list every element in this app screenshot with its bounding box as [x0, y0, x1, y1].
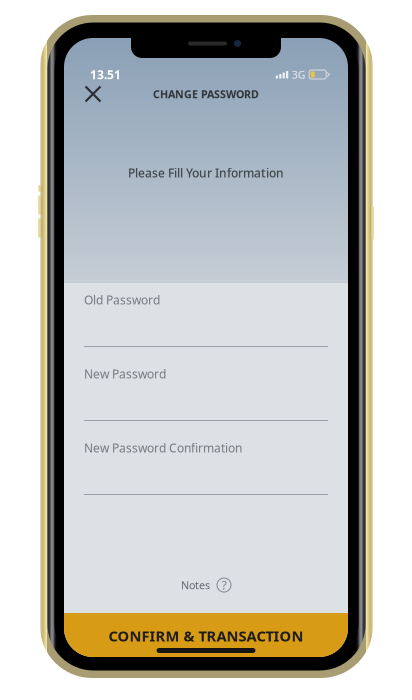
- staticText: New Password Confirmation: [84, 440, 242, 456]
- staticText: 13.51: [90, 66, 121, 82]
- staticText: 3G: [292, 67, 306, 82]
- staticText: CHANGE PASSWORD: [153, 87, 259, 101]
- staticText: Notes: [181, 578, 210, 592]
- button[interactable]: Close: [79, 80, 107, 108]
- staticText: ?: [221, 577, 226, 593]
- button[interactable]: Notes: [175, 571, 237, 599]
- staticText: CONFIRM & TRANSACTION: [108, 626, 303, 645]
- button[interactable]: CONFIRM & TRANSACTION: [64, 613, 348, 657]
- staticText: Old Password: [84, 292, 160, 308]
- staticText: New Password: [84, 366, 166, 382]
- staticText: Please Fill Your Information: [128, 165, 284, 181]
